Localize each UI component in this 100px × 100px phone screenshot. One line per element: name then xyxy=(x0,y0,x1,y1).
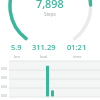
staticText: Steps xyxy=(44,11,56,17)
staticText: km xyxy=(14,54,20,59)
button[interactable]: 5.9 xyxy=(11,42,22,59)
staticText: time xyxy=(73,54,82,59)
staticText: 7,898 xyxy=(36,0,64,11)
staticText: 600 xyxy=(1,66,7,71)
staticText: kcal xyxy=(40,54,48,59)
staticText: 311.29 xyxy=(32,42,56,52)
button[interactable]: 7,898 xyxy=(0,0,100,17)
staticText: 600 xyxy=(1,93,7,98)
staticText: 600 xyxy=(1,84,7,89)
staticText: 5.9 xyxy=(11,42,22,52)
staticText: 600 xyxy=(1,75,7,80)
staticText: 01:21 xyxy=(67,42,87,52)
button[interactable]: 311.29 xyxy=(32,42,56,59)
button[interactable]: 01:21 xyxy=(67,42,87,59)
